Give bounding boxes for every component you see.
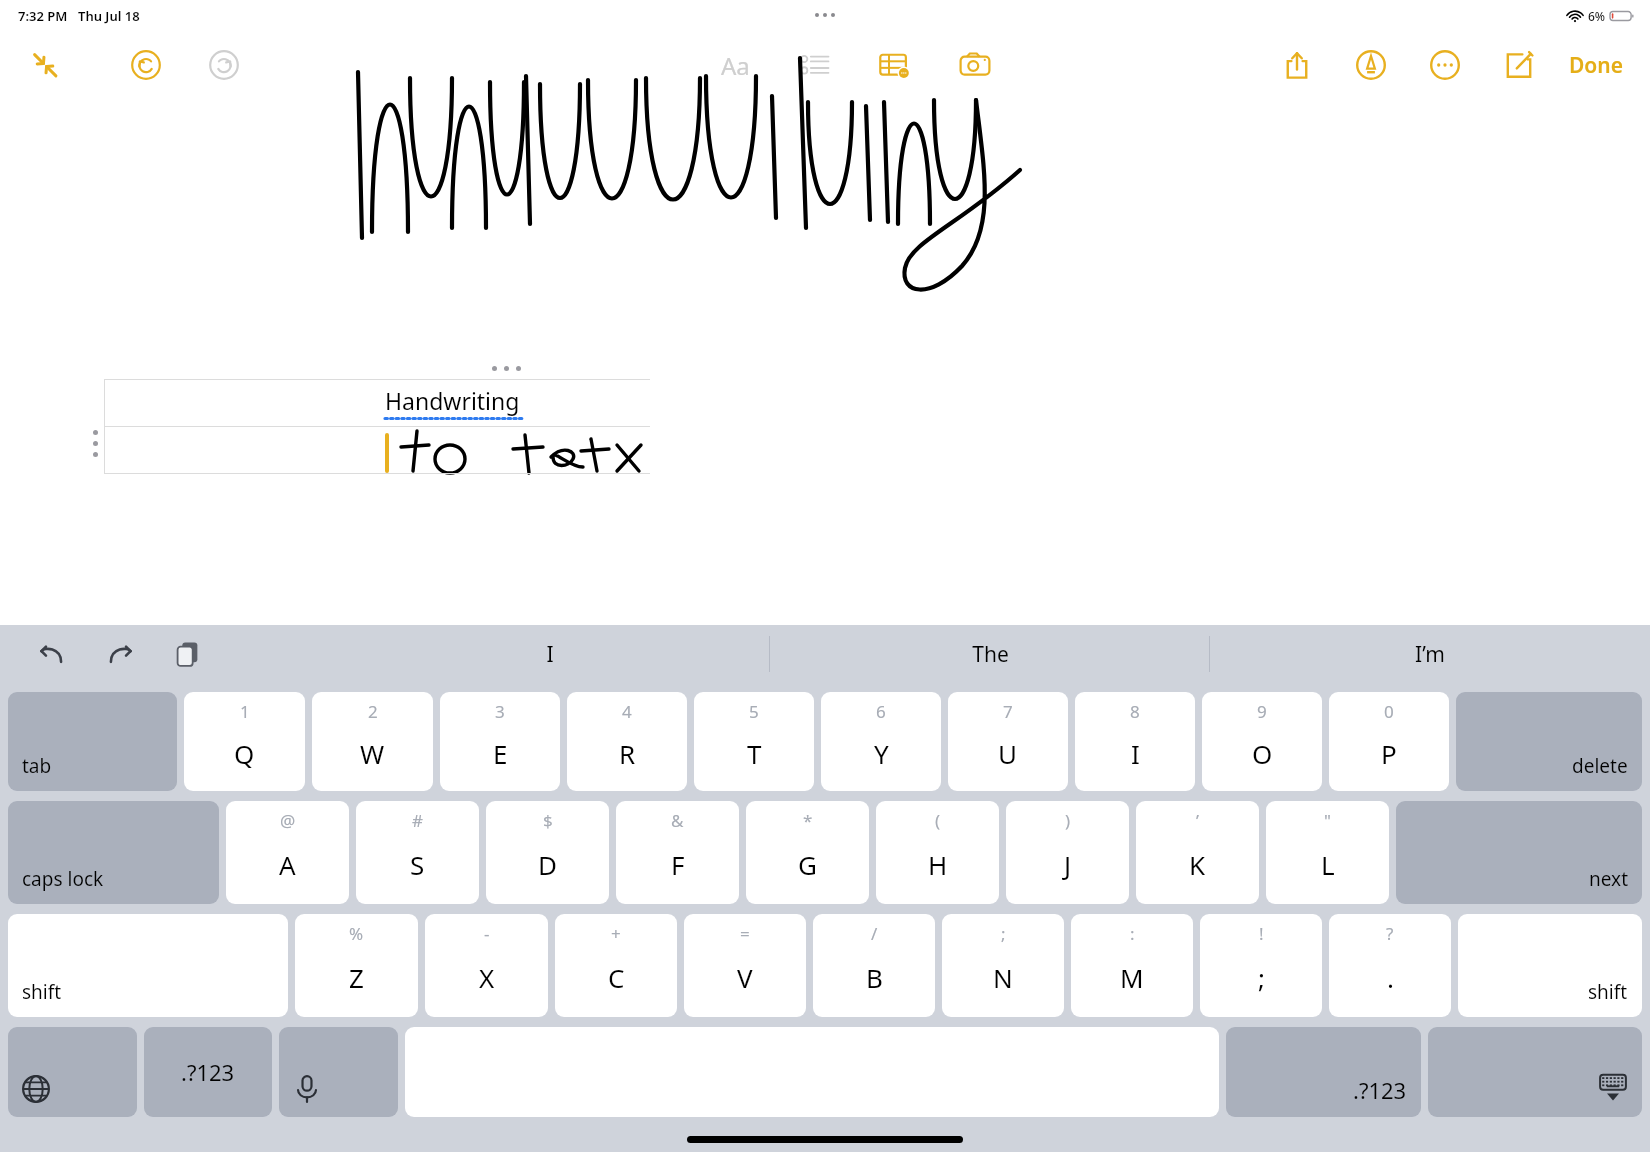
staticText: next <box>1589 866 1628 892</box>
button[interactable]: Checklist <box>788 38 842 92</box>
staticText: 4 <box>622 700 632 723</box>
staticText: T <box>747 736 762 771</box>
button[interactable]: Handwriting <box>104 380 650 426</box>
staticText: O <box>1252 736 1273 771</box>
staticText: Y <box>874 736 889 771</box>
staticText: ) <box>1065 809 1071 832</box>
button[interactable]: I <box>330 625 770 683</box>
button[interactable]: ’ <box>1136 801 1259 904</box>
staticText: ; <box>1258 960 1265 995</box>
staticText: P <box>1381 736 1397 771</box>
button[interactable]: ; <box>942 914 1064 1017</box>
button[interactable]: 1 <box>184 692 305 791</box>
staticText: 9 <box>1257 700 1267 723</box>
staticText: I <box>1131 736 1140 771</box>
button[interactable]: 2 <box>312 692 433 791</box>
button[interactable]: tab <box>8 692 177 791</box>
button[interactable]: ? <box>1329 914 1451 1017</box>
button[interactable]: 4 <box>567 692 687 791</box>
button[interactable]: # <box>356 801 479 904</box>
button[interactable]: Collapse <box>22 42 68 88</box>
staticText: # <box>412 809 423 832</box>
staticText: = <box>740 922 750 945</box>
button[interactable]: Aa <box>708 38 762 92</box>
button[interactable]: 9 <box>1202 692 1322 791</box>
staticText: .?123 <box>181 1057 235 1087</box>
staticText: ! <box>1259 922 1264 945</box>
staticText: 8 <box>1130 700 1140 723</box>
button[interactable]: % <box>295 914 418 1017</box>
button[interactable]: The <box>770 625 1210 683</box>
button[interactable]: 0 <box>1329 692 1449 791</box>
button[interactable]: ! <box>1200 914 1322 1017</box>
button[interactable] <box>104 427 650 473</box>
button[interactable]: - <box>425 914 548 1017</box>
button[interactable]: shift <box>8 914 288 1017</box>
button[interactable]: 3 <box>440 692 560 791</box>
button[interactable]: 5 <box>694 692 814 791</box>
staticText: ( <box>935 809 941 832</box>
button[interactable]: Paste <box>168 634 208 674</box>
button[interactable]: next <box>1396 801 1642 904</box>
button[interactable]: Redo <box>100 633 142 675</box>
button[interactable]: @ <box>226 801 349 904</box>
staticText: Q <box>234 736 255 771</box>
button[interactable]: = <box>684 914 806 1017</box>
staticText: " <box>1324 809 1331 832</box>
staticText: X <box>479 960 495 995</box>
button[interactable]: * <box>746 801 869 904</box>
button[interactable]: : <box>1071 914 1193 1017</box>
button[interactable]: Undo <box>124 43 168 87</box>
staticText: V <box>737 960 753 995</box>
button[interactable]: Change keyboard <box>8 1027 137 1117</box>
button[interactable]: delete <box>1456 692 1642 791</box>
button[interactable]: Done <box>1559 45 1634 86</box>
staticText: W <box>360 736 385 771</box>
button[interactable]: " <box>1266 801 1389 904</box>
button[interactable]: Table <box>868 38 922 92</box>
button[interactable]: caps lock <box>8 801 219 904</box>
button[interactable]: Hide keyboard <box>1428 1027 1642 1117</box>
staticText: ; <box>1001 922 1006 945</box>
staticText: G <box>798 847 817 882</box>
staticText: 0 <box>1384 700 1394 723</box>
staticText: ? <box>1386 922 1394 945</box>
button[interactable]: & <box>616 801 739 904</box>
button[interactable]: ) <box>1006 801 1129 904</box>
staticText: 5 <box>749 700 759 723</box>
button[interactable]: 7 <box>948 692 1068 791</box>
staticText: tab <box>22 753 52 779</box>
button[interactable]: ( <box>876 801 999 904</box>
button[interactable]: 6 <box>821 692 941 791</box>
staticText: * <box>803 809 813 832</box>
staticText: 6% <box>1588 8 1606 24</box>
button[interactable]: shift <box>1458 914 1642 1017</box>
staticText: 6 <box>876 700 886 723</box>
staticText: & <box>671 809 684 832</box>
button[interactable]: Undo <box>30 633 72 675</box>
button[interactable]: .?123 <box>144 1027 272 1117</box>
staticText: H <box>928 847 948 882</box>
button[interactable]: Redo <box>202 43 246 87</box>
button[interactable]: Camera <box>948 38 1002 92</box>
button[interactable]: Markup <box>1345 39 1397 91</box>
staticText: Done <box>1569 51 1624 80</box>
staticText: % <box>349 922 364 945</box>
staticText: F <box>671 847 685 882</box>
staticText: 1 <box>240 700 250 723</box>
button[interactable]: + <box>555 914 677 1017</box>
button[interactable]: I’m <box>1210 625 1650 683</box>
button[interactable]: / <box>813 914 935 1017</box>
button[interactable]: Dictate <box>279 1027 398 1117</box>
button[interactable]: $ <box>486 801 609 904</box>
staticText: J <box>1064 847 1072 882</box>
staticText: - <box>484 922 490 945</box>
button[interactable]: .?123 <box>1226 1027 1421 1117</box>
button[interactable]: Share <box>1271 39 1323 91</box>
staticText: I <box>546 640 554 669</box>
button[interactable]: 8 <box>1075 692 1195 791</box>
button[interactable]: New note <box>1493 39 1545 91</box>
staticText: $ <box>543 809 553 832</box>
button[interactable]: More <box>1419 39 1471 91</box>
